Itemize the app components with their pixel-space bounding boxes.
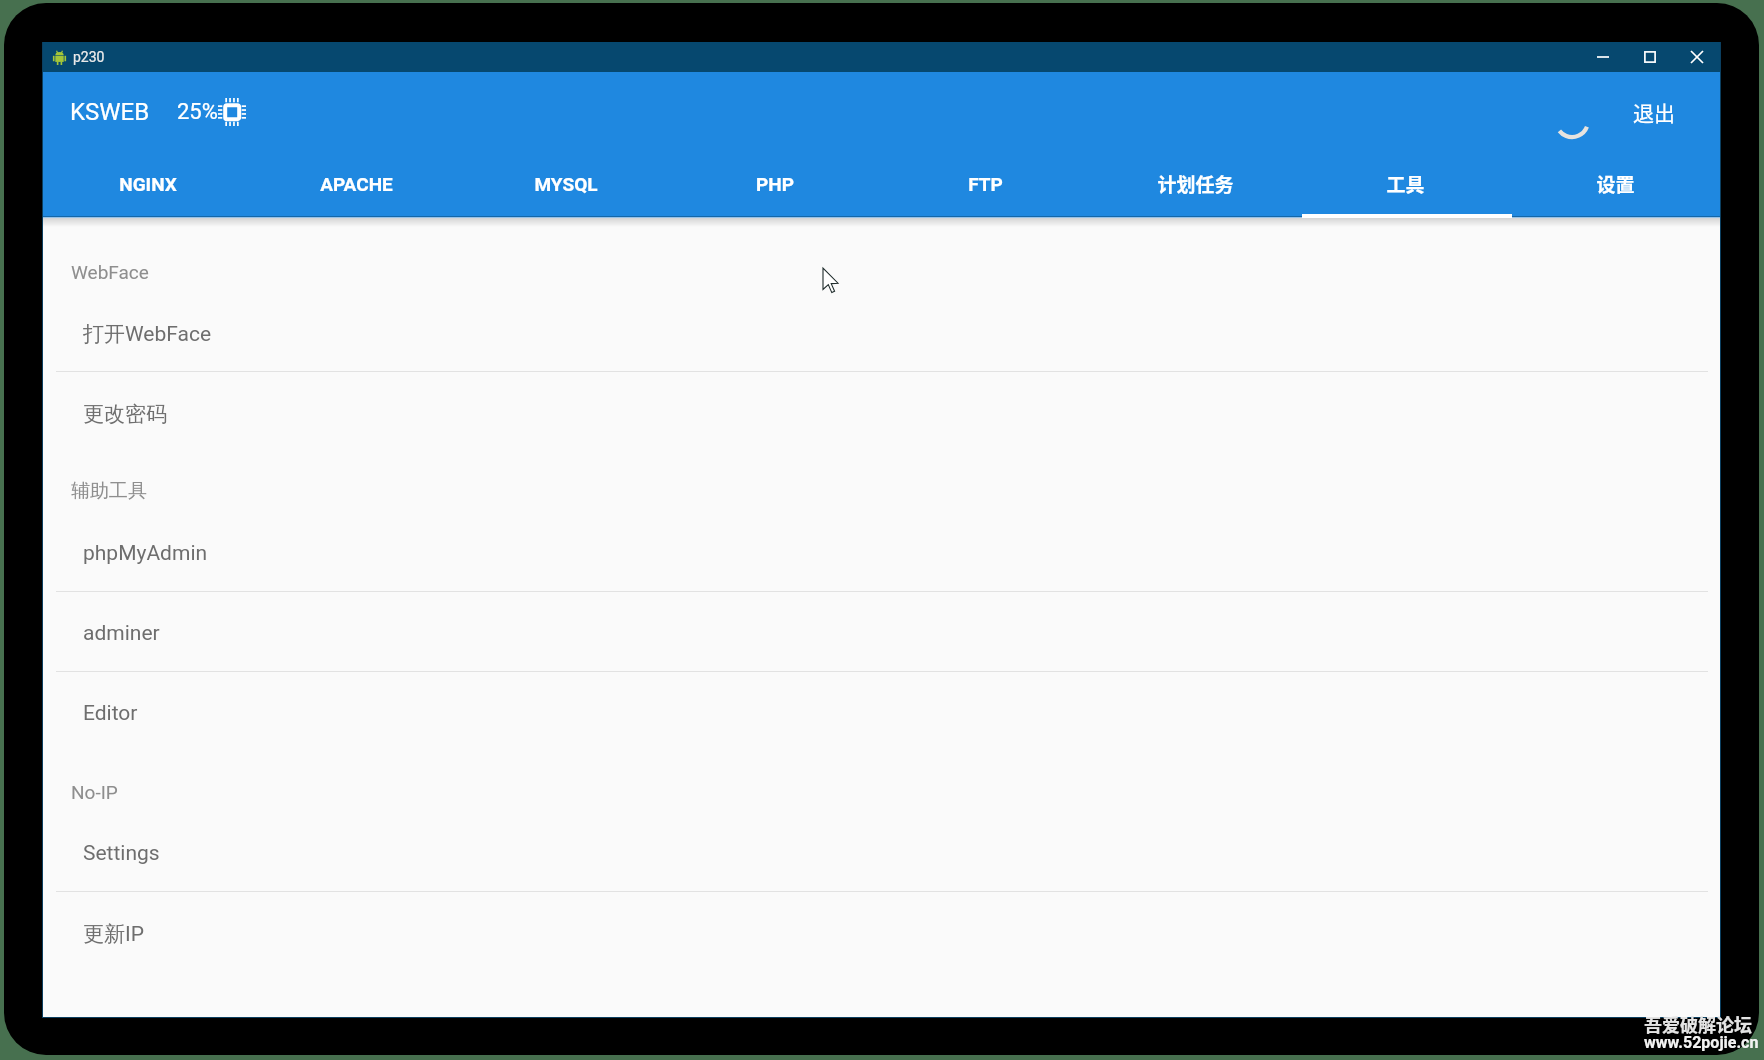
staticText: MYSQL [534,173,598,195]
staticText: 25% [177,99,218,125]
button[interactable]: PHP [670,152,880,216]
button[interactable]: FTP [880,152,1090,216]
button[interactable]: 打开WebFace [43,292,1720,372]
staticText: 更新IP [83,921,144,947]
staticText: www.52pojie.cn [1644,1033,1759,1052]
staticText: APACHE [320,173,393,195]
staticText: FTP [968,173,1003,195]
staticText: Settings [83,841,160,866]
staticText: Editor [83,701,138,726]
staticText: 更改密码 [83,401,167,427]
button[interactable]: NGINX [43,152,252,216]
button[interactable]: adminer [43,592,1720,672]
button[interactable]: APACHE [252,152,461,216]
button[interactable]: 更改密码 [43,372,1720,452]
button[interactable]: phpMyAdmin [43,512,1720,592]
staticText: 吾爱破解论坛 [1644,1011,1752,1037]
staticText: 打开WebFace [83,321,212,347]
staticText: WebFace [71,261,149,283]
button[interactable]: 计划任务 [1090,152,1300,216]
staticText: No-IP [71,781,118,803]
staticText: adminer [83,621,160,646]
button[interactable]: 工具 [1300,152,1510,216]
staticText: KSWEB [70,98,150,126]
staticText: p230 [73,49,105,65]
staticText: 辅助工具 [71,479,147,503]
staticText: 工具 [1386,170,1425,198]
staticText: 设置 [1596,170,1635,198]
button[interactable]: Close [1673,42,1720,72]
button[interactable]: 设置 [1510,152,1720,216]
staticText: 退出 [1633,97,1675,127]
staticText: NGINX [119,173,177,195]
staticText: phpMyAdmin [83,541,208,566]
button[interactable]: 更新IP [43,892,1720,972]
button[interactable]: Settings [43,812,1720,892]
staticText: PHP [756,173,794,195]
button[interactable]: Editor [43,672,1720,752]
button[interactable]: Maximize [1626,42,1673,72]
button[interactable]: MYSQL [461,152,670,216]
button[interactable]: Minimize [1579,42,1626,72]
button[interactable]: 退出 [1621,89,1687,135]
staticText: 计划任务 [1157,170,1234,198]
